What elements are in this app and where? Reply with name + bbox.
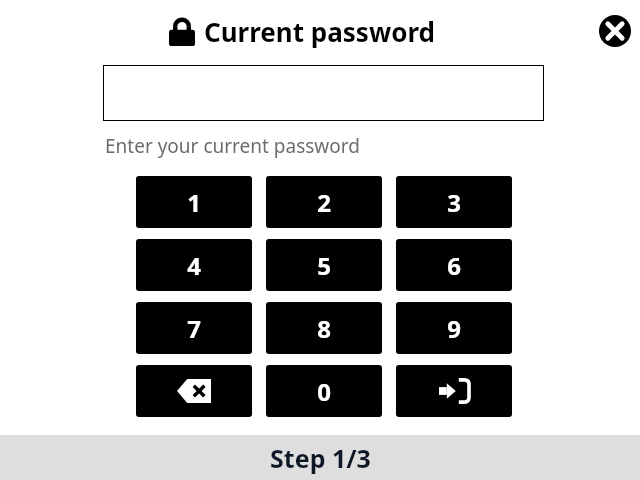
- staticText: Enter your current password: [105, 133, 360, 159]
- button[interactable]: [103, 65, 544, 121]
- button[interactable]: 6: [396, 239, 512, 291]
- button[interactable]: 4: [136, 239, 252, 291]
- button[interactable]: 5: [266, 239, 382, 291]
- staticText: 7: [187, 312, 201, 345]
- button[interactable]: 0: [266, 365, 382, 417]
- staticText: 2: [317, 186, 331, 219]
- staticText: 5: [317, 249, 331, 282]
- staticText: 9: [447, 312, 461, 345]
- button[interactable]: 2: [266, 176, 382, 228]
- button[interactable]: Close: [598, 14, 632, 48]
- staticText: 8: [317, 312, 331, 345]
- button[interactable]: 9: [396, 302, 512, 354]
- button[interactable]: 7: [136, 302, 252, 354]
- staticText: 3: [447, 186, 461, 219]
- staticText: Current password: [204, 14, 435, 49]
- staticText: 1: [187, 186, 201, 219]
- button[interactable]: Backspace: [136, 365, 252, 417]
- staticText: Step 1/3: [270, 441, 371, 475]
- staticText: 4: [187, 249, 201, 282]
- button[interactable]: 1: [136, 176, 252, 228]
- staticText: 6: [447, 249, 461, 282]
- button[interactable]: 8: [266, 302, 382, 354]
- staticText: 0: [317, 375, 331, 408]
- button[interactable]: 3: [396, 176, 512, 228]
- button[interactable]: Submit: [396, 365, 512, 417]
